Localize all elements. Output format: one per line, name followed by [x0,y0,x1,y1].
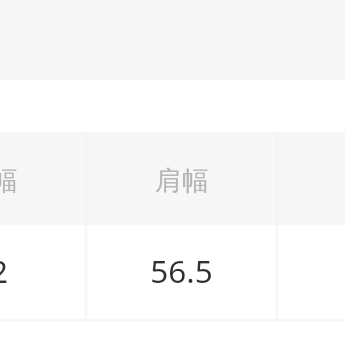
staticText: 肩幅 [155,164,209,198]
staticText: 幅 [0,164,18,198]
staticText: 2 [0,249,9,292]
staticText: 56.5 [150,249,213,292]
